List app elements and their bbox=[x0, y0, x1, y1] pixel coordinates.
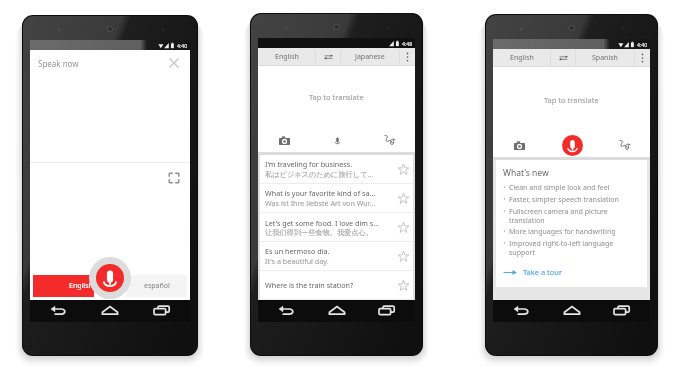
button[interactable]: Recents bbox=[152, 301, 172, 321]
staticText: 让我们得到一些食物。我爱点心。 bbox=[265, 228, 373, 237]
staticText: English bbox=[510, 53, 534, 63]
staticText: Clean and simple look and feel bbox=[509, 183, 610, 193]
staticText: 4:48 bbox=[402, 40, 413, 47]
button[interactable]: Close bbox=[166, 55, 182, 71]
button[interactable]: Star bbox=[397, 192, 410, 205]
button[interactable]: Camera bbox=[493, 133, 546, 157]
button[interactable]: More options bbox=[400, 48, 415, 66]
staticText: What is your favorite kind of sa… bbox=[265, 188, 376, 198]
button[interactable]: Let's get some food. I love dim s… bbox=[260, 213, 413, 242]
staticText: Was ist Ihre liebste Art von Wur… bbox=[265, 198, 376, 208]
button[interactable]: English bbox=[258, 48, 315, 66]
staticText: 私はビジネスのために旅行して… bbox=[265, 169, 374, 179]
staticText: Tap to translate bbox=[309, 92, 364, 102]
button[interactable]: Spanish bbox=[576, 49, 634, 67]
button[interactable]: Where is the train station? bbox=[260, 271, 413, 300]
button[interactable]: More options bbox=[635, 49, 650, 67]
button[interactable]: English bbox=[33, 275, 94, 297]
button[interactable]: Japanese bbox=[341, 48, 399, 66]
staticText: Es un hermoso día. bbox=[265, 246, 330, 256]
button[interactable]: Microphone bbox=[546, 133, 598, 157]
button[interactable]: Camera bbox=[258, 128, 311, 152]
staticText: More languages for handwriting bbox=[509, 227, 616, 237]
staticText: I'm traveling for business. bbox=[265, 159, 353, 169]
button[interactable]: I'm traveling for business. bbox=[260, 155, 413, 184]
staticText: español bbox=[144, 281, 170, 291]
staticText: It's a beautiful day. bbox=[265, 256, 329, 266]
button[interactable]: Microphone bbox=[311, 128, 363, 152]
staticText: What's new bbox=[503, 167, 549, 179]
staticText: Let's get some food. I love dim s… bbox=[265, 218, 379, 228]
staticText: 4:40 bbox=[177, 42, 188, 49]
button[interactable]: Swap languages bbox=[316, 48, 340, 66]
button[interactable]: Swap languages bbox=[551, 49, 575, 67]
staticText: 4:40 bbox=[637, 41, 648, 48]
button[interactable]: Star bbox=[397, 163, 410, 176]
button[interactable]: español bbox=[126, 275, 187, 297]
staticText: Tap to translate bbox=[544, 95, 599, 105]
staticText: Improved right-to-left language support bbox=[509, 239, 614, 257]
staticText: Fullscreen camera and picture translatio… bbox=[509, 207, 608, 225]
button[interactable]: Star bbox=[397, 250, 410, 263]
button[interactable]: Es un hermoso día. bbox=[260, 242, 413, 271]
button[interactable]: What is your favorite kind of sa… bbox=[260, 184, 413, 213]
button[interactable]: Star bbox=[397, 279, 410, 292]
staticText: Take a tour bbox=[523, 267, 563, 277]
button[interactable]: Back bbox=[276, 301, 296, 321]
staticText: Faster, simpler speech translation bbox=[509, 195, 619, 205]
button[interactable]: Home bbox=[562, 301, 582, 321]
button[interactable]: Handwriting bbox=[363, 128, 415, 152]
button[interactable]: Recents bbox=[377, 301, 397, 321]
button[interactable]: Microphone bbox=[96, 264, 124, 292]
button[interactable]: Home bbox=[100, 301, 120, 321]
button[interactable]: Handwriting bbox=[598, 133, 650, 157]
button[interactable]: Home bbox=[327, 301, 347, 321]
staticText: English bbox=[69, 281, 93, 291]
staticText: Japanese bbox=[355, 52, 385, 62]
button[interactable]: Star bbox=[397, 221, 410, 234]
button[interactable]: Fullscreen bbox=[168, 172, 180, 184]
button[interactable]: Take a tour bbox=[503, 267, 563, 280]
staticText: Spanish bbox=[592, 53, 618, 63]
staticText: English bbox=[275, 52, 299, 62]
staticText: Where is the train station? bbox=[265, 280, 354, 290]
button[interactable]: Back bbox=[48, 301, 68, 321]
button[interactable]: English bbox=[493, 49, 550, 67]
button[interactable]: Back bbox=[511, 301, 531, 321]
button[interactable]: Recents bbox=[612, 301, 632, 321]
staticText: Speak now bbox=[38, 58, 79, 69]
